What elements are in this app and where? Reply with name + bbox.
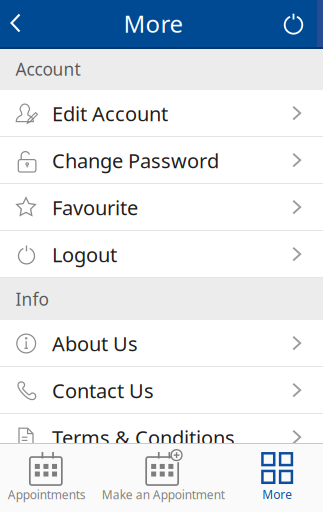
button[interactable]: About Us [0,320,323,367]
button[interactable]: Make an Appointment [108,444,215,512]
staticText: Make an Appointment [102,486,225,502]
button[interactable]: Terms & Conditions [0,414,323,461]
button[interactable]: Power [271,0,323,47]
staticText: More [123,8,183,39]
staticText: Appointments [8,486,86,502]
button[interactable]: Logout [0,231,323,278]
button[interactable]: More [215,444,323,512]
staticText: Account [15,57,80,80]
staticText: Logout [52,241,117,268]
staticText: More [262,486,292,502]
button[interactable]: Contact Us [0,367,323,414]
staticText: Contact Us [52,377,154,404]
staticText: Edit Account [52,100,168,127]
staticText: Favourite [52,194,138,221]
staticText: Terms & Conditions [52,424,235,451]
button[interactable]: Favourite [0,184,323,231]
button[interactable]: Back [0,0,36,47]
staticText: Info [15,287,48,310]
staticText: About Us [52,330,138,357]
button[interactable]: Change Password [0,137,323,184]
button[interactable]: Appointments [0,444,108,512]
button[interactable]: Edit Account [0,90,323,137]
staticText: Change Password [52,147,219,174]
